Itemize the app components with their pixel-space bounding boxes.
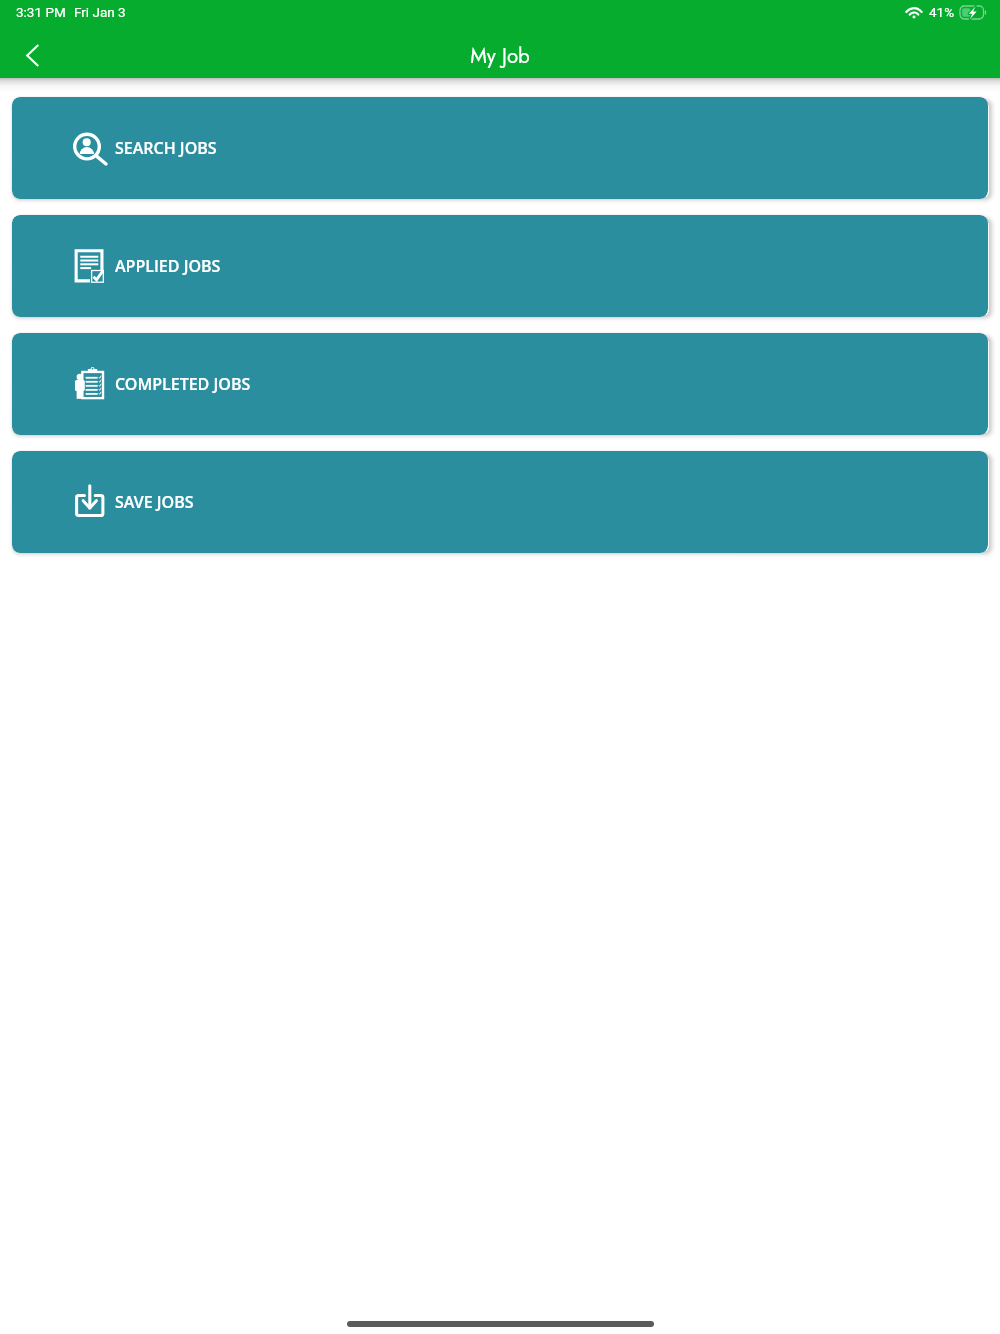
staticText: APPLIED JOBS [115,255,221,277]
button[interactable]: APPLIED JOBS [12,215,988,317]
staticText: SEARCH JOBS [115,137,217,159]
staticText: My Job [470,41,530,71]
button[interactable]: SEARCH JOBS [12,97,988,199]
staticText: SAVE JOBS [115,491,194,513]
staticText: 3:31 PM [16,4,66,20]
button[interactable]: SAVE JOBS [12,451,988,553]
staticText: Fri Jan 3 [74,4,126,20]
staticText: COMPLETED JOBS [115,373,251,395]
staticText: 41% [929,4,955,20]
button[interactable]: Back [10,33,54,77]
button[interactable]: COMPLETED JOBS [12,333,988,435]
